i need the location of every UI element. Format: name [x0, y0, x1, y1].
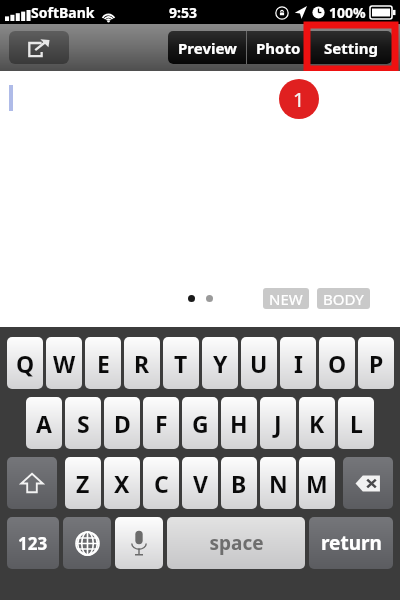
button[interactable]: Preview: [168, 31, 246, 64]
staticText: N: [269, 468, 288, 499]
button[interactable]: F: [143, 397, 179, 449]
staticText: E: [97, 348, 110, 379]
button[interactable]: U: [241, 337, 277, 389]
staticText: F: [155, 408, 168, 439]
staticText: G: [192, 408, 209, 439]
button[interactable]: Z: [65, 457, 101, 509]
staticText: BODY: [323, 289, 364, 309]
button[interactable]: I: [280, 337, 316, 389]
staticText: 9:53: [169, 3, 197, 22]
staticText: O: [328, 348, 347, 379]
button[interactable]: L: [338, 397, 374, 449]
button[interactable]: Setting: [310, 31, 392, 64]
staticText: C: [154, 468, 169, 499]
staticText: H: [230, 408, 248, 439]
staticText: X: [114, 468, 130, 499]
button[interactable]: Q: [7, 337, 43, 389]
button[interactable]: space: [167, 517, 305, 569]
button[interactable]: C: [143, 457, 179, 509]
staticText: D: [114, 408, 131, 439]
staticText: I: [294, 348, 303, 379]
staticText: 123: [18, 532, 48, 555]
button[interactable]: P: [358, 337, 394, 389]
button[interactable]: A: [26, 397, 62, 449]
button[interactable]: M: [299, 457, 335, 509]
button[interactable]: BODY: [317, 288, 370, 309]
staticText: B: [231, 468, 247, 499]
staticText: Z: [76, 468, 90, 499]
staticText: P: [369, 348, 384, 379]
staticText: Q: [16, 348, 35, 379]
button[interactable]: G: [182, 397, 218, 449]
staticText: V: [193, 468, 208, 499]
staticText: space: [209, 530, 264, 556]
button[interactable]: O: [319, 337, 355, 389]
button[interactable]: N: [260, 457, 296, 509]
staticText: M: [306, 468, 328, 499]
staticText: R: [134, 348, 150, 379]
staticText: 1: [293, 86, 305, 113]
button[interactable]: Y: [202, 337, 238, 389]
button[interactable]: Backspace: [343, 457, 393, 509]
staticText: Photo: [256, 38, 301, 58]
staticText: Y: [213, 348, 228, 379]
button[interactable]: S: [65, 397, 101, 449]
staticText: W: [53, 348, 76, 379]
button[interactable]: J: [260, 397, 296, 449]
button[interactable]: D: [104, 397, 140, 449]
button[interactable]: Change keyboard: [63, 517, 111, 569]
button[interactable]: R: [124, 337, 160, 389]
button[interactable]: V: [182, 457, 218, 509]
staticText: Setting: [324, 38, 378, 58]
staticText: 100%: [329, 3, 366, 22]
staticText: A: [36, 408, 52, 439]
staticText: T: [174, 348, 188, 379]
staticText: NEW: [269, 289, 303, 309]
button[interactable]: W: [46, 337, 82, 389]
staticText: SoftBank: [31, 3, 95, 22]
button[interactable]: K: [299, 397, 335, 449]
staticText: J: [274, 408, 282, 439]
staticText: Preview: [178, 38, 237, 58]
button[interactable]: return: [309, 517, 393, 569]
staticText: L: [350, 408, 363, 439]
button[interactable]: Dictation: [115, 517, 163, 569]
staticText: S: [77, 408, 90, 439]
button[interactable]: E: [85, 337, 121, 389]
staticText: K: [309, 408, 325, 439]
button[interactable]: T: [163, 337, 199, 389]
button[interactable]: 123: [7, 517, 59, 569]
staticText: U: [250, 348, 268, 379]
button[interactable]: X: [104, 457, 140, 509]
staticText: return: [321, 530, 382, 556]
button[interactable]: Shift: [7, 457, 57, 509]
button[interactable]: Share: [9, 31, 69, 64]
button[interactable]: Photo: [247, 31, 309, 64]
button[interactable]: NEW: [263, 288, 309, 309]
button[interactable]: H: [221, 397, 257, 449]
button[interactable]: B: [221, 457, 257, 509]
